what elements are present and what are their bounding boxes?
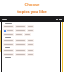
button[interactable] <box>27 43 34 46</box>
staticText: Choose <box>24 2 40 8</box>
button[interactable] <box>15 29 26 32</box>
button[interactable]: App bar <box>0 16 64 22</box>
button[interactable] <box>3 25 14 28</box>
button[interactable] <box>27 49 34 52</box>
button[interactable] <box>15 33 23 36</box>
button[interactable] <box>15 25 26 28</box>
button[interactable] <box>27 29 34 32</box>
button[interactable] <box>24 33 31 36</box>
button[interactable] <box>3 39 14 42</box>
button[interactable] <box>3 49 14 52</box>
button[interactable] <box>27 39 34 42</box>
button[interactable] <box>15 43 26 46</box>
button[interactable] <box>15 39 26 42</box>
button[interactable] <box>3 53 14 56</box>
staticText: topics you like <box>17 9 47 15</box>
button[interactable] <box>27 25 34 28</box>
button[interactable] <box>3 33 14 36</box>
button[interactable] <box>15 49 26 52</box>
button[interactable] <box>3 29 14 32</box>
button[interactable] <box>27 53 34 56</box>
button[interactable] <box>15 53 26 56</box>
button[interactable] <box>3 43 14 46</box>
